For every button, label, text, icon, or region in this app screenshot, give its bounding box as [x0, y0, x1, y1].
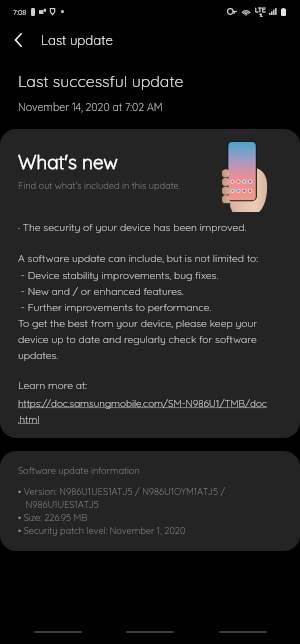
staticText: • Version: N986U1UES1ATJ5 / N986U1OYM1AT…	[18, 486, 226, 537]
button[interactable]: Back	[208, 620, 278, 644]
button[interactable]: Home	[115, 620, 185, 644]
staticText: Last update	[41, 32, 113, 49]
staticText: Learn more at:	[18, 379, 88, 392]
staticText: A software update can include, but is no…	[18, 252, 280, 361]
staticText: · The security of your device has been i…	[18, 221, 247, 234]
staticText: Find out what's included in this update.	[18, 180, 181, 192]
button[interactable]: What's new	[0, 129, 300, 438]
staticText: November 14, 2020 at 7:02 AM	[18, 100, 163, 113]
staticText: Software update information	[18, 465, 140, 477]
staticText: ⇅	[259, 13, 263, 18]
button[interactable]: Back	[0, 22, 38, 58]
staticText: LTE	[255, 5, 266, 13]
staticText: Last successful update	[18, 71, 184, 91]
button[interactable]: Software update information	[0, 451, 300, 551]
staticText: What's new	[18, 150, 118, 174]
staticText: 7:08	[13, 7, 27, 16]
button[interactable]: https://doc.samsungmobile.com/SM-N986U1/…	[18, 397, 267, 425]
button[interactable]: Recents	[23, 620, 93, 644]
